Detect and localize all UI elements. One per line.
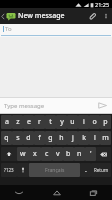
staticText: x — [33, 149, 37, 159]
staticText: u — [70, 117, 75, 127]
staticText: v — [56, 149, 60, 159]
staticText: a — [5, 117, 9, 127]
button[interactable]: y — [56, 115, 67, 129]
button[interactable]: c — [41, 147, 52, 161]
button[interactable]: Recent apps — [75, 185, 112, 200]
button[interactable]: q — [1, 131, 12, 145]
staticText: c — [45, 149, 49, 159]
button[interactable]: Back — [0, 185, 38, 200]
button[interactable]: Shift — [1, 147, 17, 161]
staticText: Return — [94, 167, 109, 173]
staticText: e — [27, 117, 31, 127]
button[interactable]: j — [67, 131, 78, 145]
staticText: r — [38, 117, 41, 127]
button[interactable]: s — [12, 131, 23, 145]
staticText: New message — [18, 11, 65, 21]
button[interactable]: . — [80, 163, 91, 177]
button[interactable]: Send — [92, 98, 112, 113]
staticText: m — [102, 133, 109, 143]
button[interactable]: k — [78, 131, 89, 145]
staticText: d — [26, 133, 31, 143]
button[interactable]: Return — [91, 163, 111, 177]
staticText: Type message — [4, 102, 45, 110]
button[interactable]: r — [34, 115, 45, 129]
staticText: Français — [45, 167, 65, 174]
staticText: z — [16, 117, 20, 127]
staticText: h — [59, 133, 64, 143]
staticText: w — [20, 149, 26, 159]
button[interactable]: To — [0, 24, 112, 34]
staticText: 21:25 — [95, 1, 110, 8]
staticText: b — [66, 149, 71, 159]
button[interactable]: ?123 — [1, 163, 17, 177]
button[interactable]: x — [29, 147, 41, 161]
button[interactable]: e — [23, 115, 34, 129]
button[interactable]: b — [63, 147, 74, 161]
button[interactable]: i — [78, 115, 89, 129]
button[interactable]: m — [100, 131, 111, 145]
button[interactable]: Navigate up — [0, 8, 18, 24]
button[interactable]: ' — [85, 147, 96, 161]
button[interactable]: Voice input — [17, 163, 29, 177]
button[interactable]: Attach — [84, 8, 100, 24]
button[interactable]: z — [12, 115, 23, 129]
button[interactable]: More options — [100, 8, 112, 24]
button[interactable]: f — [34, 131, 45, 145]
staticText: To — [5, 25, 12, 33]
staticText: f — [38, 133, 41, 143]
staticText: q — [4, 133, 9, 143]
staticText: j — [72, 133, 74, 143]
staticText: s — [16, 133, 20, 143]
button[interactable]: l — [89, 131, 100, 145]
button[interactable]: a — [1, 115, 12, 129]
button[interactable]: h — [56, 131, 67, 145]
button[interactable]: v — [52, 147, 63, 161]
button[interactable]: n — [74, 147, 85, 161]
button[interactable]: o — [89, 115, 100, 129]
button[interactable]: Delete — [96, 147, 111, 161]
button[interactable]: d — [23, 131, 34, 145]
staticText: n — [77, 149, 82, 159]
staticText: ' — [90, 149, 92, 159]
button[interactable]: Home — [38, 185, 75, 200]
staticText: i — [83, 117, 85, 127]
button[interactable]: g — [45, 131, 56, 145]
staticText: . — [85, 165, 87, 175]
staticText: g — [48, 133, 53, 143]
button[interactable]: Français — [29, 163, 80, 177]
staticText: p — [103, 117, 108, 127]
staticText: k — [82, 133, 86, 143]
button[interactable]: t — [45, 115, 56, 129]
button[interactable]: Type message — [0, 98, 92, 113]
staticText: ?123 — [4, 167, 14, 173]
staticText: l — [94, 133, 96, 143]
button[interactable]: u — [67, 115, 78, 129]
button[interactable]: p — [100, 115, 111, 129]
staticText: t — [49, 117, 52, 127]
button[interactable]: w — [17, 147, 29, 161]
staticText: y — [60, 117, 64, 127]
staticText: o — [92, 117, 97, 127]
